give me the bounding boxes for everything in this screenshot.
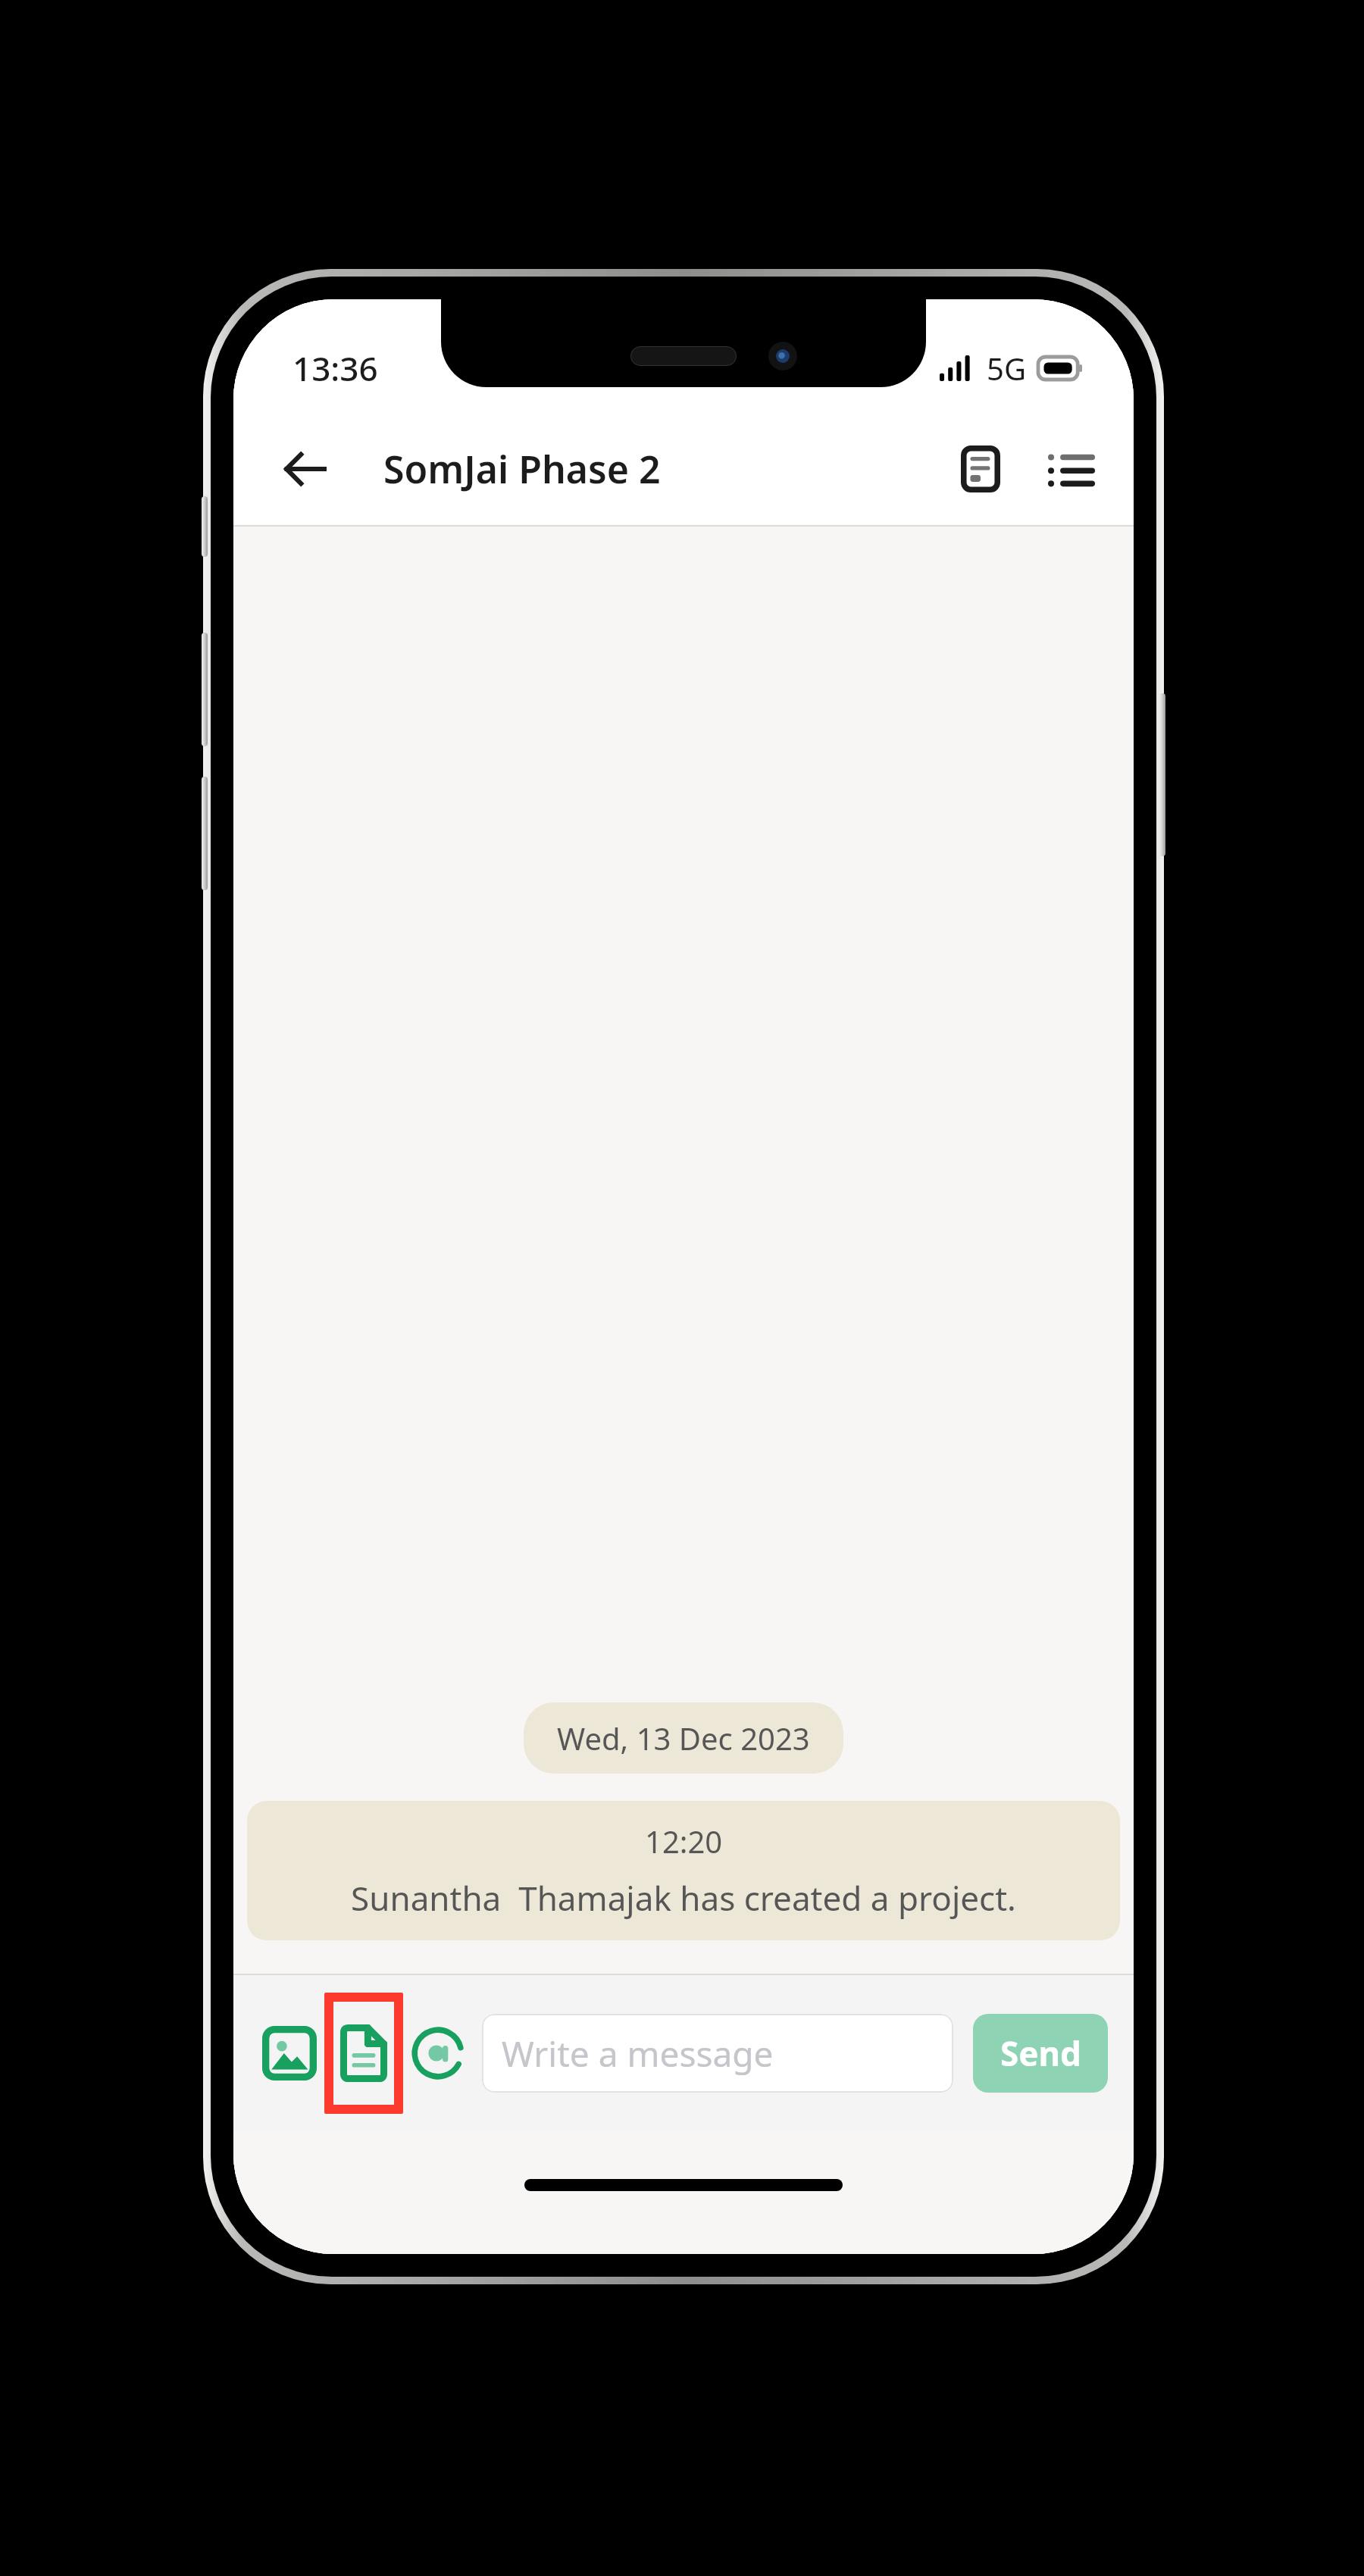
button[interactable]: Write a message	[482, 2014, 953, 2093]
staticText: Wed, 13 Dec 2023	[557, 1718, 810, 1758]
staticText: Send	[1000, 2030, 1081, 2076]
button[interactable]: Task list	[1032, 430, 1111, 508]
staticText: 13:36	[293, 345, 378, 391]
staticText: 5G	[987, 348, 1026, 389]
button[interactable]: Attach image	[255, 2018, 324, 2088]
staticText: SomJai Phase 2	[383, 443, 661, 495]
staticText: Write a message	[502, 2030, 774, 2077]
button[interactable]: Wed, 13 Dec 2023	[524, 1702, 843, 1774]
staticText: 12:20	[645, 1821, 723, 1862]
button[interactable]: 12:20	[247, 1801, 1120, 1940]
button[interactable]: Send	[973, 2014, 1108, 2093]
button[interactable]: Attach document	[324, 1993, 403, 2114]
button[interactable]: Back	[264, 427, 347, 511]
button[interactable]: Notes	[941, 430, 1020, 508]
button[interactable]: Mention	[403, 2018, 473, 2088]
staticText: Sunantha Thamajak has created a project.	[351, 1875, 1016, 1921]
